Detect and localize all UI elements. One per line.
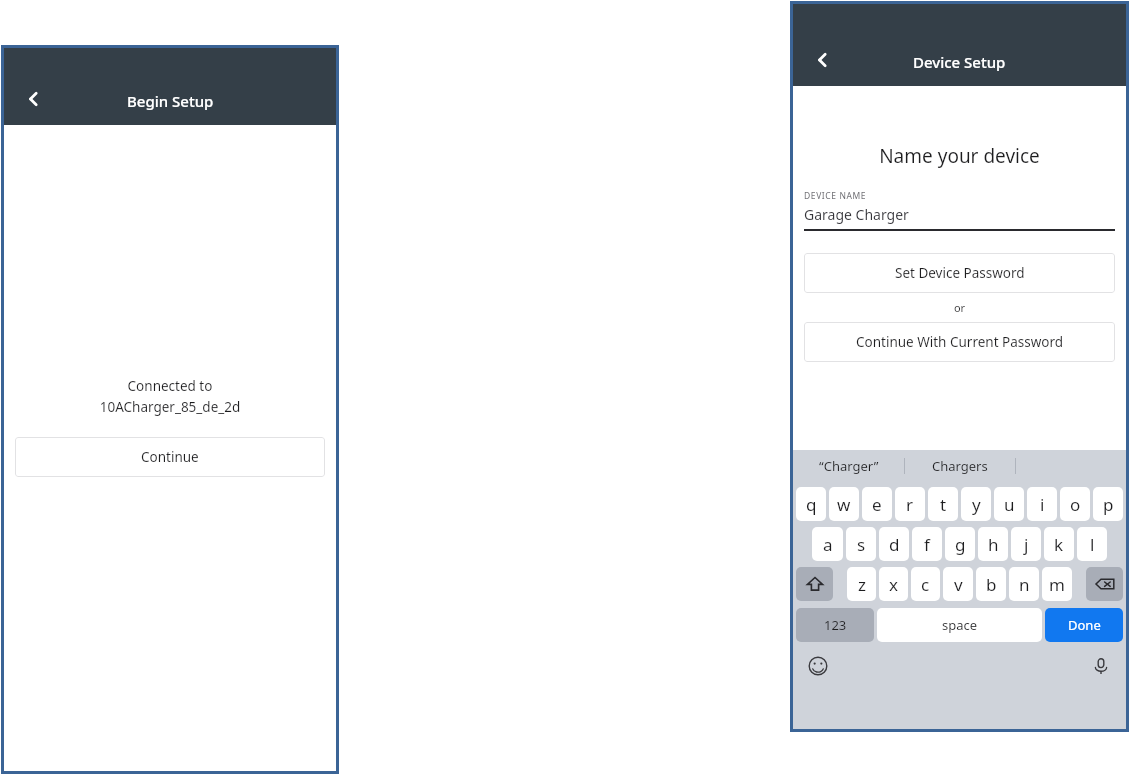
button[interactable]: g (945, 527, 975, 561)
button[interactable]: Set Device Password (804, 253, 1115, 293)
button[interactable]: Delete (1086, 567, 1123, 601)
button[interactable]: v (943, 567, 973, 601)
button[interactable]: space (877, 608, 1042, 642)
button[interactable]: Dictation (1087, 652, 1115, 680)
button[interactable]: Done (1045, 608, 1123, 642)
staticText: i (1040, 493, 1045, 516)
staticText: v (954, 573, 963, 596)
button[interactable]: p (1093, 487, 1123, 521)
staticText: or (804, 300, 1115, 315)
button[interactable]: Back (803, 40, 843, 80)
staticText: d (889, 533, 900, 556)
button[interactable]: x (879, 567, 908, 601)
button[interactable]: w (829, 487, 859, 521)
button[interactable]: Back (14, 79, 54, 119)
button[interactable]: h (978, 527, 1008, 561)
button[interactable]: m (1042, 567, 1072, 601)
staticText: Device Setup (913, 52, 1006, 72)
button[interactable]: Continue With Current Password (804, 322, 1115, 362)
button[interactable]: j (1011, 527, 1041, 561)
button[interactable]: e (862, 487, 892, 521)
staticText: g (955, 533, 966, 556)
button[interactable]: s (846, 527, 876, 561)
staticText: y (972, 493, 981, 516)
button[interactable]: o (1060, 487, 1090, 521)
staticText: o (1070, 493, 1081, 516)
staticText: u (1004, 493, 1015, 516)
staticText: r (906, 493, 914, 516)
staticText: Continue With Current Password (856, 333, 1064, 351)
button[interactable]: 123 (796, 608, 874, 642)
button[interactable]: u (994, 487, 1024, 521)
staticText: z (858, 573, 866, 596)
button[interactable]: b (976, 567, 1006, 601)
button[interactable]: t (928, 487, 958, 521)
staticText: Connected to (15, 377, 325, 395)
staticText: q (806, 493, 817, 516)
button[interactable]: “Charger” (793, 450, 904, 482)
staticText: b (986, 573, 997, 596)
staticText: c (921, 573, 930, 596)
button[interactable]: q (796, 487, 826, 521)
staticText: Set Device Password (895, 264, 1025, 282)
staticText: a (823, 533, 833, 556)
button[interactable]: n (1009, 567, 1039, 601)
staticText: f (924, 533, 930, 556)
button[interactable]: Continue (15, 437, 325, 477)
staticText: Done (1068, 616, 1101, 634)
staticText: k (1054, 533, 1064, 556)
staticText: “Charger” (819, 457, 879, 475)
button[interactable]: r (895, 487, 925, 521)
button[interactable]: Emoji (804, 652, 832, 680)
staticText: s (857, 533, 866, 556)
staticText: Chargers (932, 457, 988, 475)
staticText: 10ACharger_85_de_2d (15, 398, 325, 416)
staticText: Name your device (793, 143, 1126, 169)
staticText: j (1024, 533, 1029, 556)
staticText: Garage Charger (804, 205, 909, 224)
button[interactable]: z (847, 567, 876, 601)
staticText: DEVICE NAME (804, 190, 867, 202)
button[interactable]: c (911, 567, 940, 601)
button[interactable]: Shift (796, 567, 833, 601)
staticText: m (1049, 573, 1065, 596)
button[interactable]: l (1077, 527, 1107, 561)
staticText: p (1103, 493, 1114, 516)
staticText: Begin Setup (127, 91, 214, 111)
button[interactable]: i (1027, 487, 1057, 521)
staticText: n (1019, 573, 1030, 596)
staticText: t (940, 493, 947, 516)
staticText: h (988, 533, 999, 556)
button[interactable]: y (961, 487, 991, 521)
button[interactable]: d (879, 527, 909, 561)
staticText: w (837, 493, 851, 516)
staticText: l (1090, 533, 1095, 556)
staticText: e (872, 493, 882, 516)
button[interactable]: f (912, 527, 942, 561)
button[interactable]: k (1044, 527, 1074, 561)
button[interactable]: a (812, 527, 843, 561)
button[interactable]: Chargers (905, 450, 1015, 482)
staticText: 123 (824, 616, 847, 634)
staticText: x (889, 573, 898, 596)
staticText: Continue (141, 448, 199, 466)
staticText: space (942, 616, 978, 634)
